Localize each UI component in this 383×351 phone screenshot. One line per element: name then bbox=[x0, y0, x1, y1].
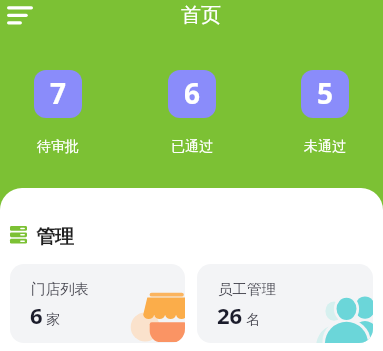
staticText: 门店列表 bbox=[31, 280, 89, 298]
button[interactable]: 6 bbox=[168, 70, 216, 156]
button[interactable]: 门店列表 bbox=[10, 264, 185, 343]
staticText: 6 bbox=[184, 74, 201, 112]
staticText: 6 bbox=[30, 300, 43, 330]
button[interactable]: Menu bbox=[0, 0, 44, 32]
staticText: 5 bbox=[317, 74, 334, 112]
staticText: 员工管理 bbox=[218, 280, 276, 298]
staticText: 首页 bbox=[181, 3, 221, 28]
staticText: 7 bbox=[50, 74, 67, 112]
staticText: 名 bbox=[246, 311, 260, 329]
staticText: 26 bbox=[217, 300, 243, 330]
staticText: 待审批 bbox=[37, 138, 79, 156]
button[interactable]: 员工管理 bbox=[197, 264, 373, 343]
staticText: 管理 bbox=[36, 225, 74, 249]
staticText: 未通过 bbox=[304, 138, 346, 156]
staticText: 已通过 bbox=[171, 138, 213, 156]
staticText: 家 bbox=[46, 311, 60, 329]
button[interactable]: 7 bbox=[34, 70, 82, 156]
button[interactable]: 5 bbox=[301, 70, 349, 156]
